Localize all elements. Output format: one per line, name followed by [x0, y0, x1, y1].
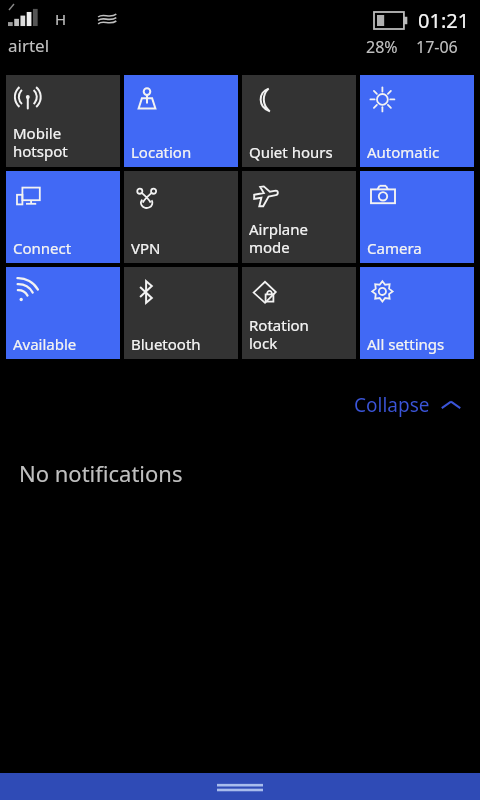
staticText: Quiet hours — [249, 142, 333, 162]
staticText: Location — [131, 142, 192, 162]
button[interactable]: Camera — [360, 171, 474, 263]
button[interactable]: Navigation bar handle — [0, 773, 480, 800]
button[interactable]: Automatic — [360, 75, 474, 167]
staticText: No notifications — [19, 458, 183, 488]
staticText: Bluetooth — [131, 334, 201, 354]
other: Signal strength — [8, 8, 42, 30]
staticText: 17-06 — [416, 36, 458, 58]
button[interactable]: Airplane mode — [242, 171, 356, 263]
staticText: Mobile hotspot — [13, 123, 68, 162]
staticText: Automatic — [367, 142, 440, 162]
staticText: airtel — [8, 34, 50, 57]
button[interactable]: Mobile hotspot — [6, 75, 120, 167]
other: Data transfer — [95, 9, 121, 29]
staticText: VPN — [131, 238, 161, 258]
staticText: Connect — [13, 238, 72, 258]
staticText: Available — [13, 334, 77, 354]
staticText: Camera — [367, 238, 422, 258]
staticText: 28% — [366, 36, 398, 58]
button[interactable]: Connect — [6, 171, 120, 263]
button[interactable]: All settings — [360, 267, 474, 359]
staticText: Collapse — [354, 392, 430, 418]
staticText: Airplane mode — [249, 219, 308, 258]
staticText: H — [55, 9, 67, 29]
button[interactable]: Available — [6, 267, 120, 359]
other: Battery 28 percent — [374, 12, 408, 29]
button[interactable]: Bluetooth — [124, 267, 238, 359]
button[interactable]: Quiet hours — [242, 75, 356, 167]
button[interactable]: Location — [124, 75, 238, 167]
button[interactable]: Collapse — [348, 386, 468, 424]
staticText: 01:21 — [418, 7, 470, 34]
button[interactable]: VPN — [124, 171, 238, 263]
staticText: All settings — [367, 334, 445, 354]
staticText: Rotation lock — [249, 315, 309, 354]
button[interactable]: Rotation lock — [242, 267, 356, 359]
